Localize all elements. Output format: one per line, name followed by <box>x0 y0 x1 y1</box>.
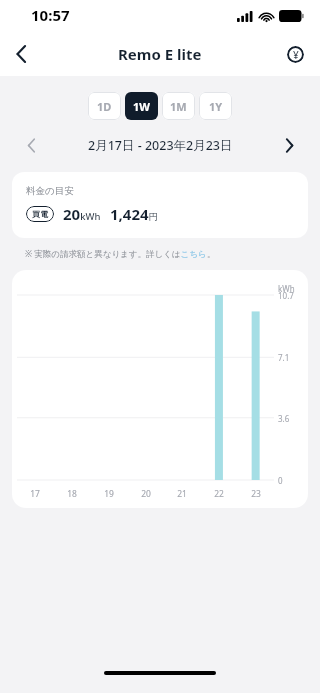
staticText: 7.1 <box>278 352 290 363</box>
staticText: 1,424円 <box>110 204 159 224</box>
staticText: 23 <box>246 488 266 500</box>
button[interactable]: ※ 実際の請求額と異なります。詳しくはこちら。 <box>25 248 216 260</box>
staticText: 1M <box>170 99 187 114</box>
button[interactable]: 1Y <box>199 92 232 120</box>
button[interactable]: 1W <box>125 92 158 120</box>
staticText: 10:57 <box>31 5 70 25</box>
staticText: 20 <box>136 488 156 500</box>
staticText: 0 <box>278 475 283 486</box>
staticText: 22 <box>209 488 229 500</box>
staticText: 料金の目安 <box>26 185 74 197</box>
staticText: 20kWh <box>63 204 101 224</box>
button[interactable]: 1M <box>162 92 195 120</box>
button[interactable]: Price settings <box>278 37 312 71</box>
staticText: ¥ <box>293 48 299 62</box>
staticText: 1Y <box>209 99 223 114</box>
staticText: 17 <box>25 488 45 500</box>
staticText: Remo E lite <box>118 44 202 64</box>
staticText: 3.6 <box>278 413 290 424</box>
button[interactable]: Previous period <box>16 132 46 158</box>
staticText: 10.7 <box>278 290 294 301</box>
staticText: 2月17日 - 2023年2月23日 <box>88 137 233 154</box>
staticText: kWh <box>278 283 295 294</box>
button[interactable]: 1D <box>88 92 121 120</box>
staticText: 18 <box>62 488 82 500</box>
staticText: 19 <box>99 488 119 500</box>
button[interactable]: Next period <box>274 132 304 158</box>
button[interactable]: Back <box>0 32 44 76</box>
staticText: 21 <box>172 488 192 500</box>
staticText: 1W <box>133 99 150 114</box>
staticText: 1D <box>97 99 112 114</box>
button[interactable]: 料金の目安 <box>12 172 308 238</box>
staticText: 買電 <box>32 209 48 219</box>
